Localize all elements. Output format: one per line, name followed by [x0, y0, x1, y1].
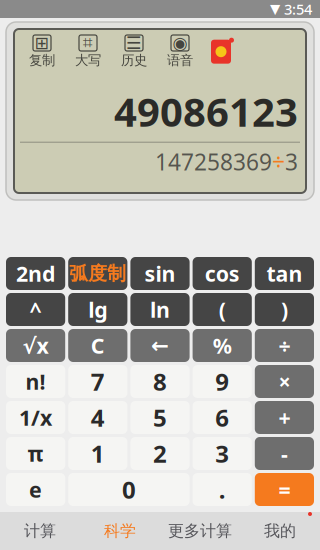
button[interactable]: 2: [130, 437, 190, 470]
staticText: 3:54: [284, 0, 312, 19]
button[interactable]: 科学: [80, 512, 160, 550]
button[interactable]: π: [6, 437, 65, 470]
staticText: ◉: [172, 33, 187, 53]
button[interactable]: -: [255, 437, 314, 470]
staticText: ln: [150, 295, 170, 324]
button[interactable]: 0: [68, 473, 190, 506]
staticText: ÷: [278, 331, 290, 360]
button[interactable]: 弧度制: [68, 257, 127, 290]
button[interactable]: 我的: [240, 512, 320, 550]
button[interactable]: 3: [193, 437, 252, 470]
button[interactable]: ⌗: [68, 35, 108, 68]
button[interactable]: 5: [130, 401, 190, 434]
staticText: 复制: [29, 52, 55, 68]
button[interactable]: 9: [193, 365, 252, 398]
staticText: lg: [88, 295, 107, 324]
button[interactable]: √x: [6, 329, 65, 362]
button[interactable]: 更多计算: [160, 512, 240, 550]
staticText: -: [281, 439, 288, 468]
staticText: ): [281, 295, 288, 324]
button[interactable]: (: [193, 293, 252, 326]
button[interactable]: %: [193, 329, 252, 362]
button[interactable]: 计算: [0, 512, 80, 550]
staticText: 科学: [104, 521, 136, 541]
button[interactable]: ×: [255, 365, 314, 398]
staticText: n!: [26, 367, 46, 396]
staticText: ⌗: [83, 34, 93, 51]
button[interactable]: 8: [130, 365, 190, 398]
staticText: 5: [153, 402, 167, 433]
staticText: 语音: [167, 52, 193, 68]
staticText: ▼: [270, 1, 280, 16]
staticText: ☰: [126, 33, 142, 53]
button[interactable]: C: [68, 329, 127, 362]
button[interactable]: e: [6, 473, 65, 506]
button[interactable]: ÷: [255, 329, 314, 362]
button[interactable]: ): [255, 293, 314, 326]
staticText: 更多计算: [168, 521, 232, 541]
staticText: ←: [151, 333, 169, 358]
button[interactable]: tan: [255, 257, 314, 290]
staticText: 弧度制: [69, 262, 126, 285]
staticText: tan: [266, 259, 302, 288]
staticText: %: [213, 331, 232, 360]
button[interactable]: ⊞: [22, 35, 62, 68]
button[interactable]: 1: [68, 437, 127, 470]
staticText: 49086123: [114, 85, 298, 138]
button[interactable]: 2nd: [6, 257, 65, 290]
staticText: 1: [91, 438, 105, 469]
staticText: sin: [144, 259, 175, 288]
staticText: C: [91, 331, 105, 360]
staticText: 2nd: [16, 259, 55, 288]
staticText: 9: [215, 366, 229, 397]
staticText: 3: [215, 438, 229, 469]
staticText: 4: [91, 402, 105, 433]
button[interactable]: sin: [130, 257, 190, 290]
button[interactable]: 4: [68, 401, 127, 434]
staticText: 1/x: [19, 403, 52, 432]
button[interactable]: 红包: [206, 37, 236, 67]
staticText: =: [278, 475, 290, 504]
button[interactable]: ←: [130, 329, 190, 362]
button[interactable]: ln: [130, 293, 190, 326]
staticText: 0: [122, 474, 136, 505]
button[interactable]: 1/x: [6, 401, 65, 434]
button[interactable]: .: [193, 473, 252, 506]
button[interactable]: +: [255, 401, 314, 434]
button[interactable]: 6: [193, 401, 252, 434]
staticText: +: [278, 403, 290, 432]
staticText: ^: [30, 295, 42, 324]
staticText: 2: [153, 438, 167, 469]
staticText: 147258369: [155, 147, 272, 177]
staticText: 6: [215, 402, 229, 433]
button[interactable]: lg: [68, 293, 127, 326]
button[interactable]: ☰: [114, 35, 154, 68]
staticText: 8: [153, 366, 167, 397]
button[interactable]: ^: [6, 293, 65, 326]
staticText: ⊞: [34, 33, 49, 53]
staticText: 3: [285, 147, 298, 177]
button[interactable]: cos: [193, 257, 252, 290]
staticText: (: [219, 295, 226, 324]
button[interactable]: =: [255, 473, 314, 506]
staticText: ×: [278, 367, 290, 396]
staticText: cos: [205, 259, 240, 288]
staticText: 大写: [75, 52, 101, 68]
button[interactable]: ◉: [160, 35, 200, 68]
staticText: ÷: [272, 147, 285, 177]
staticText: 7: [91, 366, 105, 397]
staticText: e: [29, 475, 42, 504]
button[interactable]: 7: [68, 365, 127, 398]
staticText: √x: [23, 331, 49, 360]
staticText: π: [28, 439, 44, 468]
staticText: 历史: [121, 52, 147, 68]
staticText: .: [219, 474, 226, 505]
staticText: 我的: [264, 521, 296, 541]
staticText: 计算: [24, 521, 56, 541]
button[interactable]: n!: [6, 365, 65, 398]
